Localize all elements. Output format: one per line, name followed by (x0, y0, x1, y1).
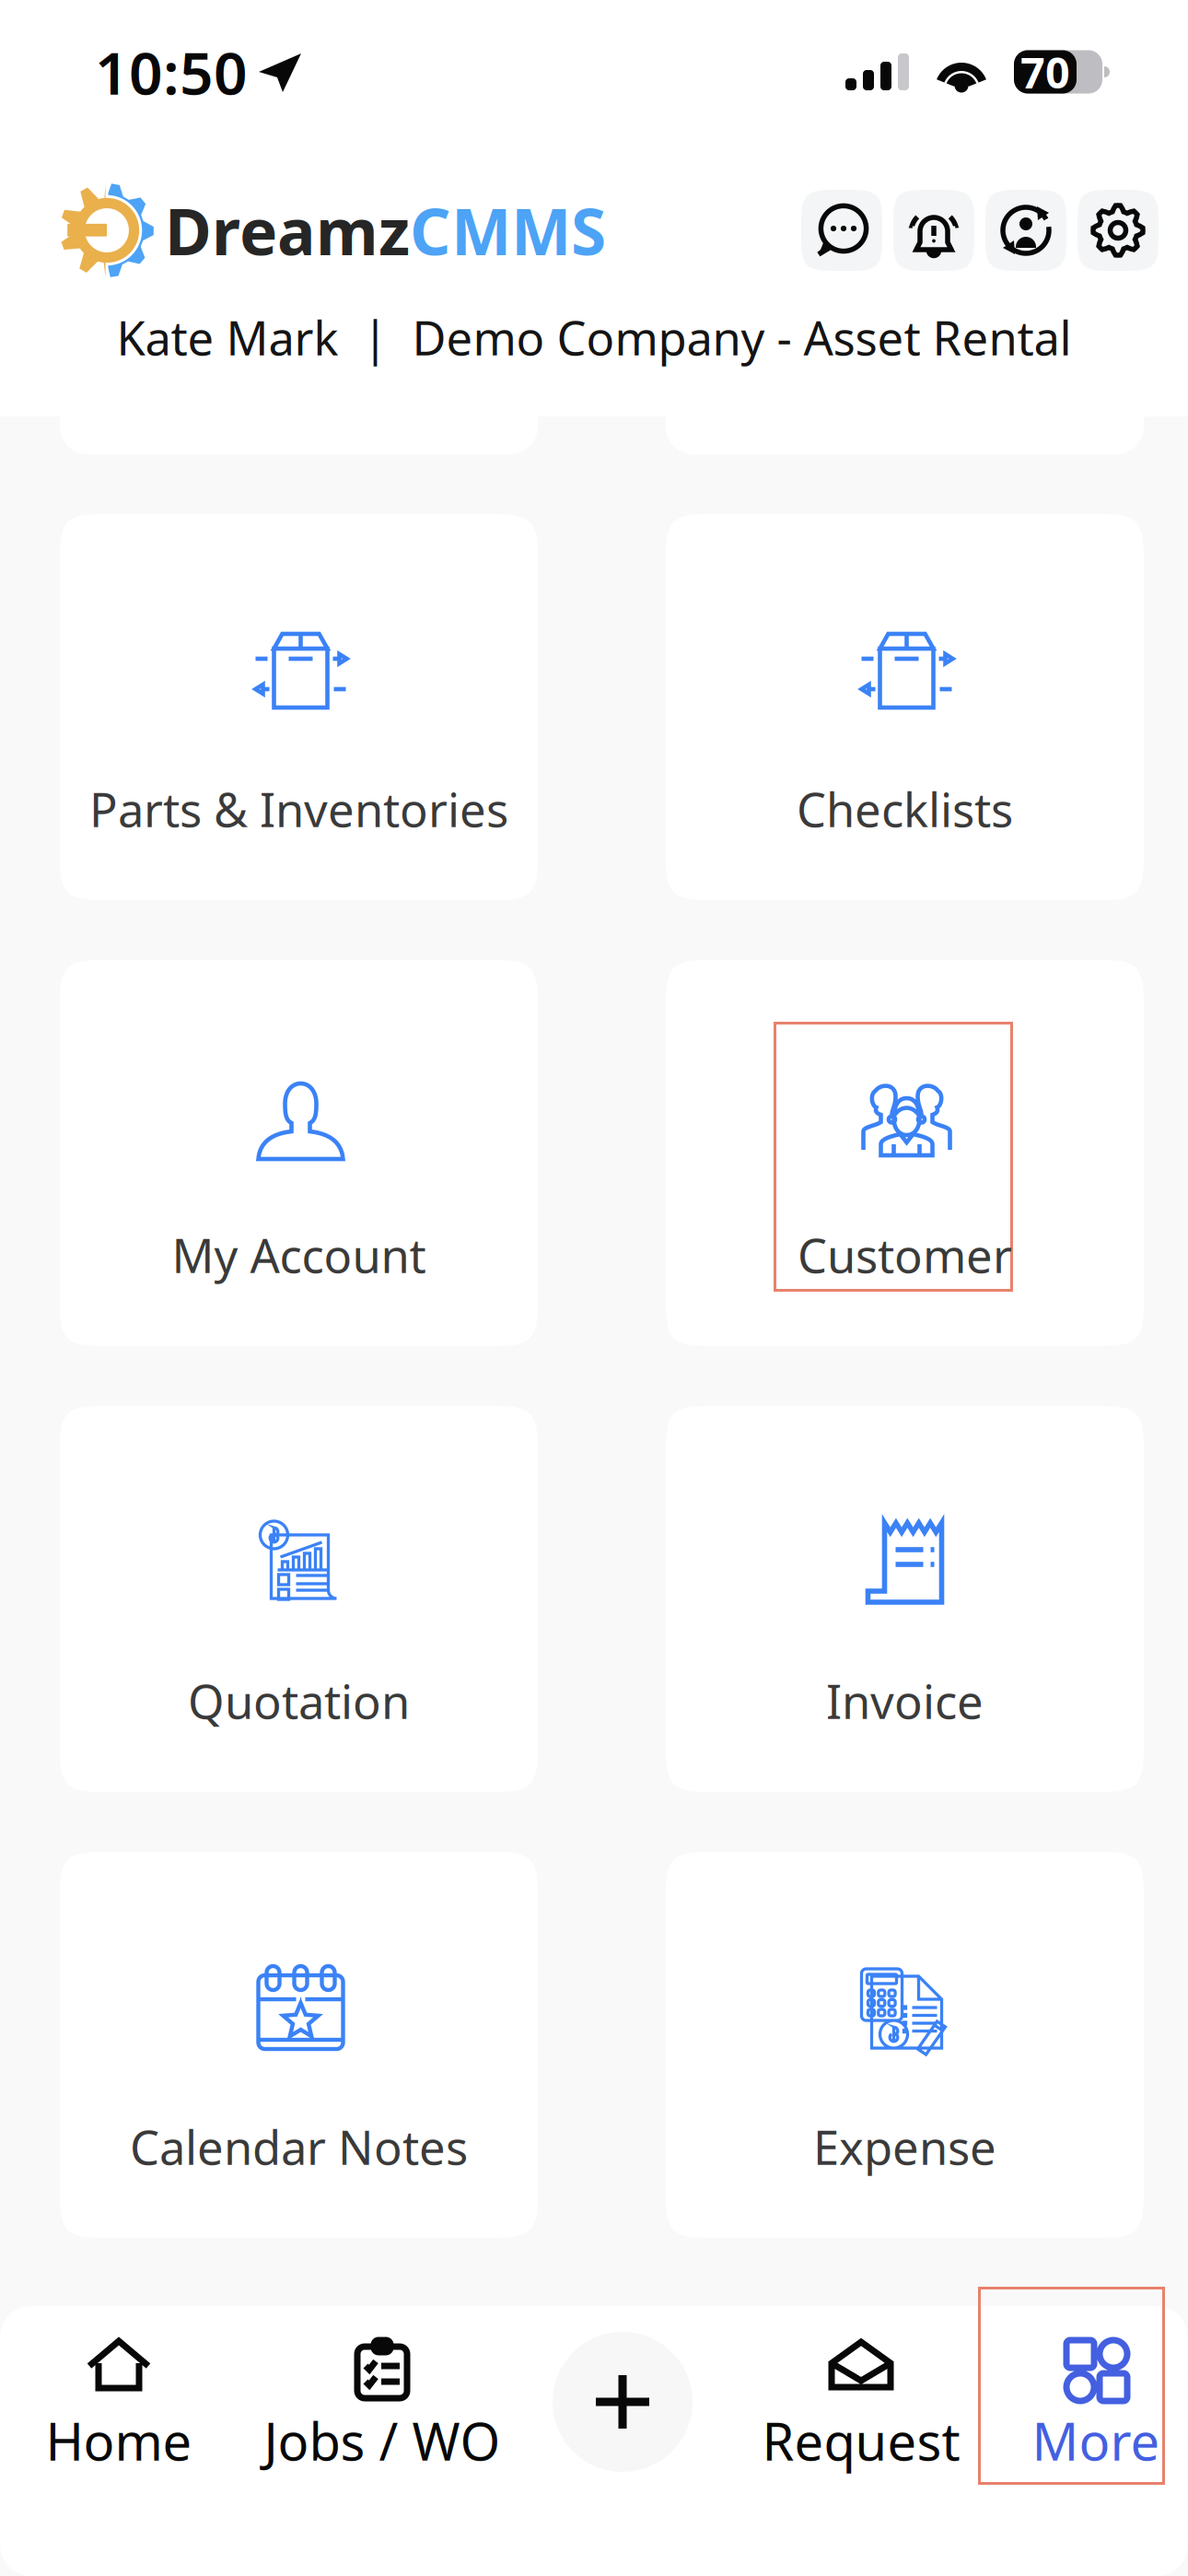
button[interactable]: Messages (801, 190, 882, 271)
staticText: Request (762, 2406, 960, 2475)
button[interactable]: Jobs / WO (249, 2333, 516, 2471)
button[interactable]: Parts & Inventories (60, 514, 538, 900)
button[interactable]: Add (553, 2332, 693, 2472)
button[interactable]: Expense (666, 1852, 1144, 2238)
button[interactable]: Switch user (985, 190, 1066, 271)
staticText: Expense (813, 2116, 996, 2178)
staticText: Dreamz (165, 188, 410, 273)
staticText: Parts & Inventories (89, 778, 508, 840)
staticText: Calendar Notes (130, 2116, 468, 2178)
button[interactable]: Settings (1077, 190, 1159, 271)
button[interactable]: Calendar Notes (60, 1852, 538, 2238)
staticText: Home (46, 2406, 192, 2475)
staticText: Invoice (826, 1670, 984, 1732)
button[interactable]: Home (13, 2333, 225, 2471)
button[interactable]: My Account (60, 960, 538, 1346)
staticText: More (1032, 2406, 1160, 2475)
button[interactable]: Notifications (893, 190, 974, 271)
staticText: CMMS (410, 188, 606, 273)
staticText: My Account (172, 1224, 426, 1286)
staticText: Quotation (188, 1670, 410, 1732)
button[interactable]: More (999, 2333, 1188, 2471)
staticText: Jobs / WO (264, 2406, 501, 2475)
staticText: Customer (798, 1224, 1012, 1286)
button[interactable]: Checklists (666, 514, 1144, 900)
staticText: Checklists (797, 778, 1013, 840)
staticText: 70 (1020, 43, 1070, 100)
staticText: 10:50 (95, 33, 248, 111)
button[interactable]: Request (746, 2333, 976, 2471)
button[interactable]: Quotation (60, 1406, 538, 1792)
button[interactable]: Invoice (666, 1406, 1144, 1792)
staticText: Kate Mark | Demo Company - Asset Rental (116, 306, 1072, 368)
button[interactable]: Customer (666, 960, 1144, 1346)
